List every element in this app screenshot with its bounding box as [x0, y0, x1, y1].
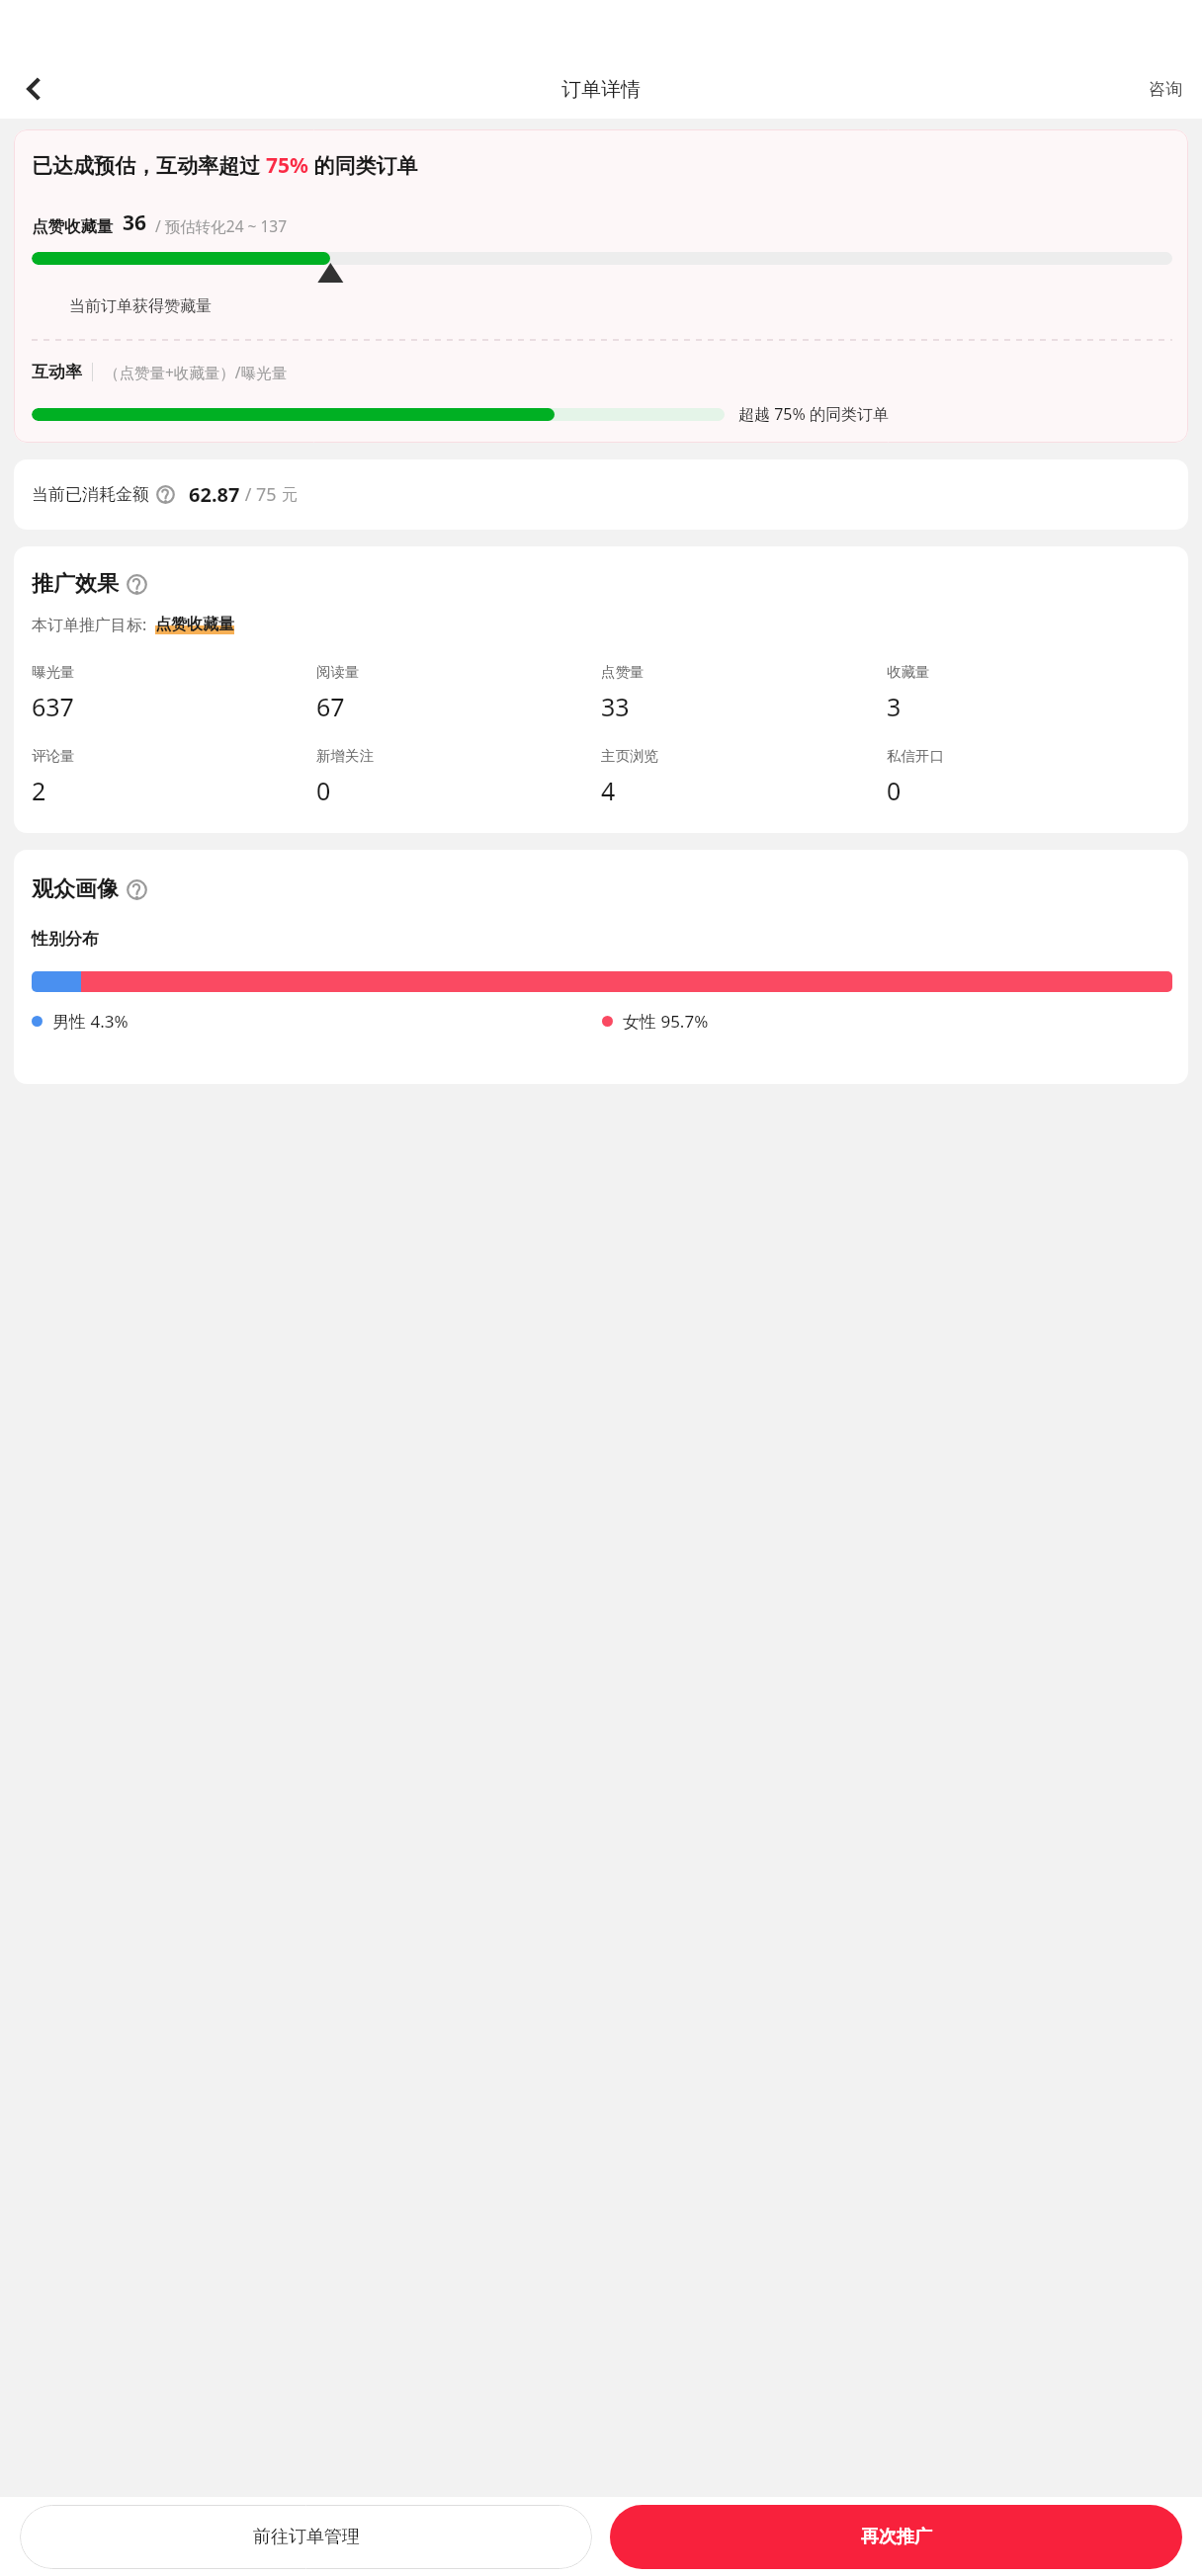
staticText: 75%	[266, 151, 308, 180]
staticText: 再次推广	[861, 2526, 932, 2548]
staticText: 的同类订单	[308, 151, 418, 180]
button[interactable]: 再次推广	[610, 2505, 1182, 2569]
staticText: 当前已消耗金额	[32, 484, 149, 505]
staticText: 新增关注	[316, 747, 374, 765]
staticText: 637	[32, 690, 74, 723]
staticText: 主页浏览	[601, 747, 658, 765]
button[interactable]: 当前已消耗金额	[14, 459, 1188, 530]
staticText: 3	[887, 690, 901, 723]
staticText: 曝光量	[32, 663, 75, 681]
staticText: 订单详情	[561, 77, 641, 102]
staticText: 当前订单获得赞藏量	[69, 296, 212, 316]
staticText: 观众画像	[32, 875, 119, 903]
button[interactable]: 前往订单管理	[20, 2505, 592, 2569]
staticText: （点赞量+收藏量）/曝光量	[104, 362, 288, 382]
staticText: 性别分布	[32, 929, 99, 950]
staticText: 33	[601, 690, 630, 723]
staticText: / 75	[240, 482, 282, 507]
staticText: 咨询	[1149, 79, 1182, 100]
button[interactable]: 咨询	[1141, 71, 1190, 108]
staticText: 收藏量	[887, 663, 930, 681]
staticText: 元	[282, 485, 298, 505]
staticText: 互动率	[32, 362, 82, 382]
staticText: 女性 95.7%	[623, 1010, 709, 1033]
staticText: 评论量	[32, 747, 75, 765]
staticText: 0	[316, 774, 331, 807]
staticText: 私信开口	[887, 747, 944, 765]
staticText: 阅读量	[316, 663, 360, 681]
staticText: / 预估转化24 ~ 137	[155, 215, 288, 236]
staticText: 2	[32, 774, 46, 807]
button[interactable]: Back	[10, 65, 57, 113]
staticText: 点赞量	[601, 663, 644, 681]
staticText: 62.87	[189, 481, 240, 508]
staticText: 推广效果	[32, 570, 119, 598]
staticText: 点赞收藏量	[32, 216, 114, 237]
staticText: 前往订单管理	[253, 2526, 360, 2548]
staticText: 4	[601, 774, 616, 807]
staticText: 超越 75% 的同类订单	[738, 403, 1172, 425]
staticText: 本订单推广目标:	[32, 614, 147, 635]
staticText: 男性 4.3%	[52, 1010, 129, 1033]
staticText: 0	[887, 774, 901, 807]
staticText: 36	[123, 208, 147, 237]
staticText: 已达成预估，互动率超过	[32, 151, 266, 180]
staticText: 点赞收藏量	[155, 615, 234, 634]
staticText: 67	[316, 690, 345, 723]
